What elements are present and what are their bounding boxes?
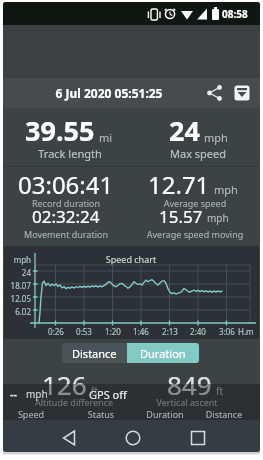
staticText: Status	[71, 408, 131, 420]
staticText: 1:46	[127, 326, 155, 337]
button[interactable]: Distance	[62, 343, 127, 363]
staticText: 3:06	[213, 326, 241, 337]
staticText: mi	[99, 130, 113, 145]
staticText: Average speed moving	[130, 228, 260, 240]
staticText: Average speed	[130, 197, 260, 209]
staticText: mph	[26, 387, 48, 401]
staticText: Vertical ascent	[122, 396, 252, 408]
staticText: Duration	[140, 346, 186, 361]
staticText: 0:26	[42, 326, 70, 337]
staticText: 849	[167, 367, 212, 402]
button[interactable]	[43, 420, 93, 452]
staticText: 2:40	[184, 326, 212, 337]
button[interactable]	[229, 80, 255, 106]
staticText: Max speed	[133, 146, 260, 161]
button[interactable]	[108, 420, 158, 452]
staticText: Speed chart	[81, 253, 181, 265]
staticText: 12.71	[148, 168, 210, 201]
staticText: 126	[42, 367, 87, 402]
staticText: 0:53	[70, 326, 98, 337]
staticText: GPS off	[89, 387, 127, 402]
staticText: Distance	[194, 408, 254, 420]
staticText: Distance	[72, 346, 117, 361]
staticText: Duration	[135, 408, 195, 420]
staticText: 24	[4, 267, 31, 278]
staticText: Record duration	[3, 197, 131, 209]
staticText: 02:32:24	[32, 205, 100, 228]
staticText: 6 Jul 2020 05:51:25	[24, 85, 194, 101]
button[interactable]: Duration	[127, 343, 199, 363]
staticText: 6.02	[4, 306, 31, 317]
staticText: 15.57	[159, 205, 203, 228]
staticText: 12.05	[4, 293, 31, 304]
staticText: mph	[207, 211, 229, 225]
staticText: --	[10, 386, 18, 401]
staticText: mph	[204, 130, 228, 145]
button[interactable]	[202, 80, 228, 106]
staticText: Track length	[5, 146, 135, 161]
staticText: 1:20	[99, 326, 127, 337]
staticText: 03:06:41	[18, 168, 114, 201]
staticText: mph	[4, 254, 31, 265]
staticText: 2:13	[156, 326, 184, 337]
staticText: Movement duration	[3, 228, 131, 240]
button[interactable]	[171, 420, 221, 452]
staticText: Altitude difference	[9, 396, 139, 408]
staticText: ft	[216, 384, 224, 398]
staticText: H.m	[238, 326, 254, 337]
staticText: Speed	[3, 408, 61, 420]
staticText: 18.07	[4, 280, 31, 291]
staticText: 39.55	[25, 112, 95, 149]
staticText: ft	[91, 384, 99, 398]
staticText: 08:58	[222, 7, 248, 21]
staticText: mph	[214, 182, 238, 197]
staticText: 24	[169, 112, 200, 149]
